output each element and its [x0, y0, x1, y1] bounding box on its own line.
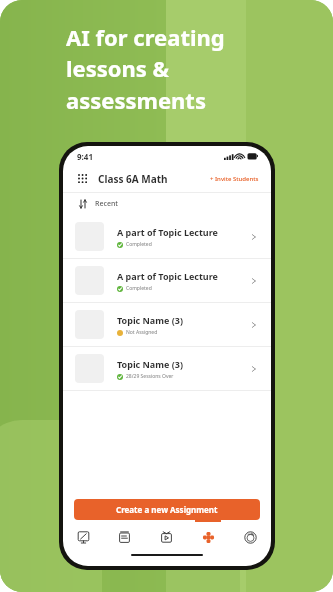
button[interactable]: A part of Topic Lecture: [63, 215, 271, 258]
other: Open: [249, 276, 259, 286]
staticText: A part of Topic Lecture: [117, 270, 218, 282]
button[interactable]: Topic Name (3): [63, 347, 271, 390]
staticText: AI for creating lessons & assessments: [66, 22, 225, 116]
button[interactable]: Topic Name (3): [63, 303, 271, 346]
staticText: 9:41: [77, 151, 93, 162]
other: Open: [249, 364, 259, 374]
staticText: Class 6A Math: [98, 172, 168, 186]
staticText: Not Assigned: [126, 329, 158, 336]
staticText: Topic Name (3): [117, 314, 183, 326]
staticText: 28/29 Sessions Over: [126, 373, 174, 380]
button[interactable]: Create: [187, 524, 229, 550]
button[interactable]: Sort: [76, 197, 90, 211]
staticText: Topic Name (3): [117, 358, 183, 370]
button[interactable]: + Invite Students: [209, 172, 260, 186]
staticText: + Invite Students: [210, 175, 259, 183]
button[interactable]: Apps menu: [75, 171, 91, 187]
button[interactable]: Notes: [104, 524, 145, 550]
button[interactable]: A part of Topic Lecture: [63, 259, 271, 302]
other: Open: [249, 232, 259, 242]
button[interactable]: Create a new Assignment: [74, 499, 260, 520]
staticText: Create a new Assignment: [116, 504, 218, 515]
button[interactable]: Videos: [145, 524, 187, 550]
staticText: Completed: [126, 241, 152, 248]
button[interactable]: Whiteboard: [63, 524, 104, 550]
button[interactable]: Settings: [229, 524, 271, 550]
staticText: Completed: [126, 285, 152, 292]
other: Open: [249, 320, 259, 330]
staticText: A part of Topic Lecture: [117, 226, 218, 238]
staticText: Recent: [95, 199, 118, 209]
